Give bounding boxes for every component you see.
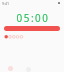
- button[interactable]: Reset timer: [8, 66, 13, 71]
- staticText: 9:41: [2, 1, 10, 6]
- button[interactable]: Settings: [26, 67, 31, 72]
- button[interactable]: Session progress: [0, 33, 64, 41]
- staticText: 05:00: [1, 11, 64, 22]
